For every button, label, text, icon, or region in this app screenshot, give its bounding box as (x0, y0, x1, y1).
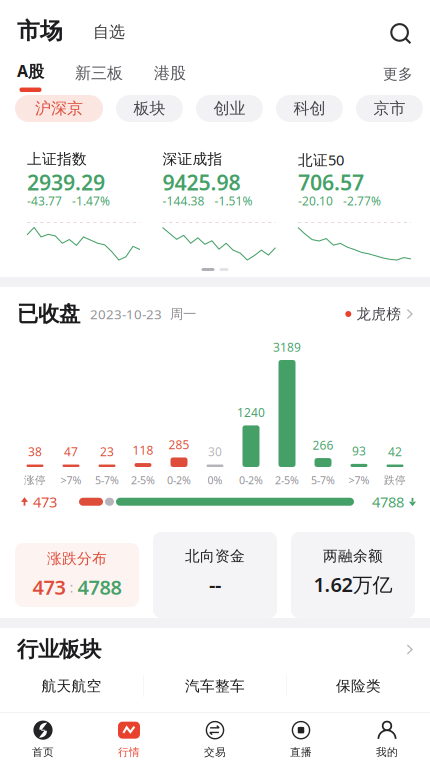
staticText: 北证50 (298, 150, 344, 169)
button[interactable]: 保险类 (287, 671, 430, 701)
staticText: 0-2% (167, 473, 191, 487)
staticText: 板块 (133, 99, 165, 118)
staticText: 龙虎榜 (356, 305, 401, 323)
staticText: 3189 (273, 339, 301, 355)
staticText: 保险类 (336, 677, 381, 695)
staticText: A股 (17, 60, 44, 81)
staticText: 深证成指 (162, 150, 222, 168)
button[interactable]: 首页 (0, 720, 86, 759)
button[interactable]: 汽车整车 (143, 671, 286, 701)
staticText: 9425.98 (162, 168, 240, 196)
staticText: 30 (208, 444, 222, 459)
staticText: 4788 (77, 574, 121, 600)
staticText: 市场 (17, 17, 63, 45)
staticText: 两融余额 (323, 547, 383, 565)
staticText: 2023-10-23 (90, 305, 162, 323)
staticText: 汽车整车 (185, 677, 245, 695)
staticText: -43.77 (27, 193, 62, 209)
staticText: 47 (64, 444, 78, 459)
staticText: 473 (32, 574, 65, 600)
button[interactable]: 直播 (258, 720, 344, 759)
staticText: 新三板 (75, 63, 123, 83)
staticText: -1.51% (214, 193, 252, 209)
button[interactable]: 涨跌分布 (15, 543, 139, 607)
staticText: 118 (132, 442, 153, 458)
staticText: >7% (60, 473, 81, 487)
staticText: >7% (348, 473, 369, 487)
button[interactable]: 行情 (86, 720, 172, 759)
staticText: 跌停 (384, 473, 406, 487)
staticText: 93 (352, 443, 366, 459)
button[interactable]: 自选 (63, 22, 125, 45)
staticText: 首页 (32, 746, 54, 759)
staticText: 行业板块 (17, 636, 101, 663)
button[interactable]: 科创 (276, 95, 343, 122)
staticText: -1.47% (72, 193, 110, 209)
staticText: 已收盘 (17, 301, 80, 327)
staticText: 自选 (93, 22, 125, 42)
staticText: -144.38 (162, 193, 204, 209)
staticText: 2-5% (131, 473, 155, 487)
staticText: 0% (207, 473, 222, 487)
staticText: 4788 (372, 492, 404, 511)
button[interactable]: 两融余额 (291, 532, 415, 618)
button[interactable]: 航天航空 (0, 671, 143, 701)
button[interactable]: 板块 (116, 95, 183, 122)
button[interactable]: Search (390, 23, 412, 45)
staticText: 北向资金 (185, 547, 245, 565)
staticText: 2939.29 (27, 168, 105, 196)
staticText: -20.10 (298, 193, 333, 209)
button[interactable]: 京市 (356, 95, 423, 122)
button[interactable]: More sectors (406, 636, 413, 663)
staticText: 0-2% (239, 473, 263, 487)
staticText: 涨停 (24, 473, 46, 487)
staticText: 473 (33, 492, 57, 511)
staticText: : (69, 577, 73, 597)
staticText: 沪深京 (35, 99, 83, 118)
staticText: 港股 (154, 63, 186, 83)
staticText: 42 (388, 444, 402, 459)
staticText: 科创 (293, 99, 325, 118)
staticText: 706.57 (298, 168, 364, 196)
button[interactable]: 沪深京 (15, 95, 103, 122)
button[interactable]: 北向资金 (153, 532, 277, 618)
button[interactable]: 新三板 (44, 63, 123, 92)
staticText: 涨跌分布 (47, 550, 107, 568)
staticText: 京市 (373, 99, 405, 118)
staticText: 1.62万亿 (313, 571, 392, 598)
staticText: 更多 (383, 65, 413, 83)
staticText: 上证指数 (27, 150, 87, 168)
button[interactable]: 龙虎榜 (345, 297, 413, 331)
button[interactable]: 港股 (123, 63, 186, 92)
staticText: -- (209, 571, 221, 598)
button[interactable]: A股 (17, 60, 44, 92)
button[interactable]: 深证成指 (162, 150, 275, 261)
staticText: 5-7% (311, 473, 335, 487)
staticText: 周一 (170, 306, 196, 322)
staticText: 1240 (237, 404, 265, 420)
staticText: 2-5% (275, 473, 299, 487)
staticText: 创业 (213, 99, 245, 118)
button[interactable]: 更多 (383, 65, 413, 92)
staticText: 285 (168, 436, 189, 452)
button[interactable]: 交易 (172, 720, 258, 759)
staticText: 航天航空 (41, 677, 101, 695)
staticText: 5-7% (95, 473, 119, 487)
staticText: 我的 (376, 746, 398, 759)
button[interactable]: 创业 (196, 95, 263, 122)
button[interactable]: 北证50 (298, 150, 411, 261)
staticText: 行情 (118, 746, 140, 759)
staticText: 266 (312, 437, 333, 453)
staticText: 38 (28, 444, 42, 459)
staticText: 23 (100, 444, 114, 459)
button[interactable]: 上证指数 (27, 150, 140, 261)
staticText: 交易 (204, 746, 226, 759)
staticText: -2.77% (343, 193, 381, 209)
staticText: 直播 (290, 746, 312, 759)
button[interactable]: 我的 (344, 720, 430, 759)
